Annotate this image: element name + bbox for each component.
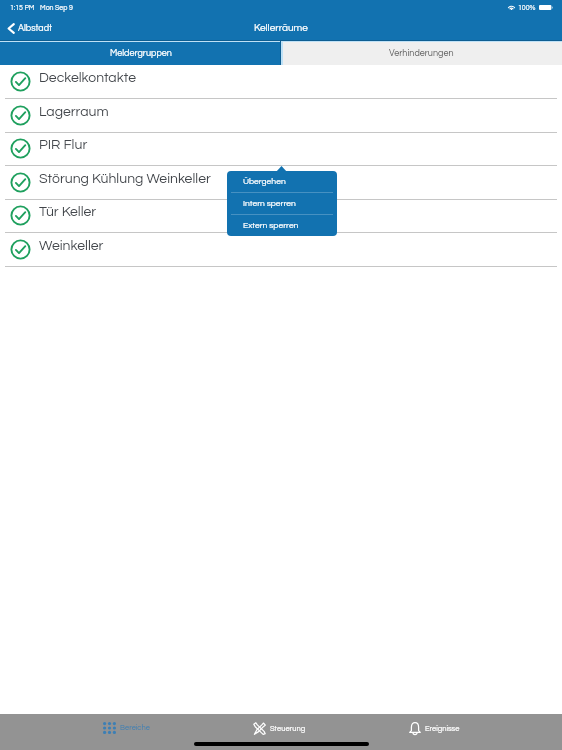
staticText: PIR Flur <box>39 138 88 152</box>
other: Wi-Fi <box>508 5 515 10</box>
staticText: Bereiche <box>120 724 150 732</box>
button[interactable]: Störung Kühlung Weinkeller <box>0 166 562 200</box>
button[interactable]: PIR Flur <box>0 132 562 166</box>
other: Battery <box>539 5 553 10</box>
other: Bereiche <box>103 722 116 734</box>
button[interactable]: Weinkeller <box>0 233 562 267</box>
button[interactable]: Meldergruppen <box>0 41 281 65</box>
other: Steuerung <box>253 722 266 735</box>
staticText: Extern sperren <box>243 221 299 230</box>
button[interactable]: Extern sperren <box>227 215 337 236</box>
button[interactable]: Übergehen <box>227 171 337 192</box>
button[interactable]: Albstadt <box>7 16 52 40</box>
button[interactable]: Bereiche <box>103 722 150 734</box>
button[interactable]: Intern sperren <box>227 193 337 214</box>
staticText: Albstadt <box>18 24 52 33</box>
staticText: 1:15 PM <box>10 4 35 11</box>
staticText: Übergehen <box>243 177 286 186</box>
staticText: Tür Keller <box>39 205 97 219</box>
other: Ereignisse <box>409 722 421 735</box>
button[interactable]: Ereignisse <box>409 722 460 735</box>
button[interactable]: Lagerraum <box>0 99 562 133</box>
staticText: 100% <box>518 4 536 11</box>
staticText: Deckelkontakte <box>39 71 136 85</box>
button[interactable]: Deckelkontakte <box>0 65 562 99</box>
button[interactable]: Tür Keller <box>0 199 562 233</box>
staticText: Lagerraum <box>39 105 109 119</box>
staticText: Ereignisse <box>425 725 460 733</box>
staticText: Weinkeller <box>39 239 104 253</box>
staticText: Störung Kühlung Weinkeller <box>39 172 211 186</box>
staticText: Kellerräume <box>254 23 308 33</box>
staticText: Meldergruppen <box>110 49 172 58</box>
staticText: Steuerung <box>270 725 306 733</box>
button[interactable]: Steuerung <box>253 722 306 735</box>
staticText: Intern sperren <box>243 199 296 208</box>
staticText: Mon Sep 9 <box>40 4 73 11</box>
button[interactable]: Verhinderungen <box>281 41 562 65</box>
staticText: Verhinderungen <box>389 49 454 58</box>
